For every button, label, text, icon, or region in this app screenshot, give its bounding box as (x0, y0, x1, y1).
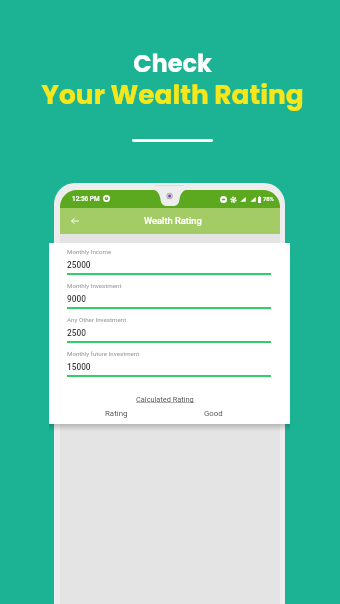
staticText: 9000 (67, 294, 86, 304)
staticText: Monthly Income (67, 248, 112, 255)
staticText: 15000 (67, 362, 91, 372)
staticText: 12:56 PM (72, 195, 100, 203)
staticText: Check (133, 47, 212, 81)
staticText: Wealth Rating (144, 215, 202, 226)
staticText: Monthly Investment (67, 282, 122, 289)
button[interactable]: Back (66, 212, 84, 230)
staticText: Calculated Rating (136, 395, 194, 404)
staticText: 78% (263, 196, 274, 203)
staticText: 25000 (67, 260, 91, 270)
staticText: 2500 (67, 328, 86, 338)
staticText: Good (204, 409, 223, 418)
staticText: Monthly future Investment (67, 350, 140, 357)
staticText: Rating (105, 409, 128, 418)
staticText: Any Other Investment (67, 316, 127, 323)
staticText: Your Wealth Rating (41, 76, 304, 113)
